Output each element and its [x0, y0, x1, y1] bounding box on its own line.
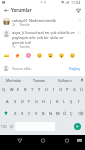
button[interactable]: C — [26, 107, 33, 119]
button[interactable]: cakaydi1 Nedimemindik — [0, 18, 85, 27]
staticText: X — [21, 111, 24, 116]
staticText: İ — [78, 99, 80, 104]
staticText: Ü — [80, 87, 83, 92]
button[interactable]: E — [15, 84, 22, 95]
staticText: W — [10, 87, 14, 92]
button[interactable]: U — [43, 84, 50, 95]
button[interactable]: Emoji — [8, 122, 15, 131]
button[interactable]: Merhaba — [0, 76, 26, 84]
staticText: ?123 — [1, 125, 7, 129]
staticText: Kullanıcı — [58, 78, 72, 83]
button[interactable]: Emoji reaction — [67, 51, 78, 60]
staticText: U — [45, 87, 48, 92]
button[interactable]: N — [47, 107, 54, 119]
button[interactable]: ?123 — [0, 122, 8, 131]
button[interactable]: Q — [0, 84, 8, 95]
button[interactable]: Share — [74, 6, 82, 14]
button[interactable]: Back — [0, 135, 31, 150]
button[interactable]: I — [50, 84, 57, 95]
button[interactable]: S — [11, 95, 19, 107]
staticText: Ş — [70, 99, 73, 104]
button[interactable]: Ş — [68, 95, 75, 107]
button[interactable]: Emoji reaction — [12, 51, 23, 60]
button[interactable]: Ü — [78, 84, 85, 95]
button[interactable]: H — [40, 95, 47, 107]
staticText: Q — [2, 87, 6, 92]
staticText: cakaydi1 Nedimemindik — [12, 18, 56, 23]
staticText: F — [28, 99, 31, 104]
button[interactable]: Y — [36, 84, 43, 95]
button[interactable]: Backspace — [75, 107, 85, 119]
button[interactable]: Emoji reaction — [23, 51, 34, 60]
staticText: Tamam — [33, 78, 46, 83]
button[interactable]: G — [33, 95, 40, 107]
button[interactable]: Emoji reaction — [56, 51, 67, 60]
button[interactable]: Send — [74, 123, 81, 130]
staticText: 2s Yanıtla — [12, 23, 30, 27]
staticText: H — [42, 99, 45, 104]
staticText: L — [63, 99, 66, 104]
button[interactable]: Hide keyboard — [73, 135, 85, 150]
staticText: Paylaş — [69, 66, 81, 71]
staticText: Yorumlar — [11, 7, 32, 13]
button[interactable]: R — [22, 84, 29, 95]
staticText: E — [17, 87, 20, 92]
button[interactable]: Paylaş — [68, 65, 82, 72]
button[interactable]: Z — [11, 107, 19, 119]
staticText: asya_k Sonuchsal en çok sibirlik ve payl… — [12, 30, 76, 45]
button[interactable]: D — [19, 95, 26, 107]
staticText: Yorum ekle... — [12, 66, 34, 71]
button[interactable]: P — [64, 84, 71, 95]
button[interactable]: Recent apps — [55, 135, 73, 150]
staticText: N — [49, 111, 53, 116]
staticText: J — [50, 99, 52, 104]
staticText: T — [31, 87, 34, 92]
staticText: Ç — [70, 111, 73, 116]
button[interactable]: J — [47, 95, 54, 107]
button[interactable]: Like — [77, 30, 82, 35]
button[interactable]: F — [26, 95, 33, 107]
staticText: P — [66, 87, 69, 92]
button[interactable]: T — [29, 84, 36, 95]
staticText: 1s Yanıtla — [12, 45, 30, 49]
staticText: Z — [14, 111, 17, 116]
button[interactable]: Back — [2, 6, 10, 14]
button[interactable]: Ö — [61, 107, 68, 119]
staticText: C — [28, 111, 31, 116]
staticText: A — [6, 99, 9, 104]
button[interactable]: Emoji reaction — [45, 51, 56, 60]
staticText: S — [14, 99, 17, 104]
button[interactable]: Kullanıcı — [52, 76, 78, 84]
button[interactable]: Voice input — [78, 76, 85, 84]
button[interactable]: W — [8, 84, 15, 95]
button[interactable]: Tamam — [26, 76, 52, 84]
staticText: I — [53, 87, 55, 92]
button[interactable]: Emoji reaction — [1, 51, 12, 60]
button[interactable]: L — [61, 95, 68, 107]
button[interactable]: Ğ — [71, 84, 78, 95]
staticText: B — [42, 111, 45, 116]
button[interactable]: asya_k Sonuchsal en çok sibirlik ve payl… — [0, 30, 85, 49]
staticText: Ö — [63, 111, 67, 116]
button[interactable]: X — [19, 107, 26, 119]
staticText: Merhaba — [6, 78, 21, 83]
staticText: Ğ — [73, 87, 76, 92]
button[interactable]: O — [57, 84, 64, 95]
button[interactable]: Like — [77, 18, 82, 23]
staticText: D — [21, 99, 24, 104]
button[interactable]: Ç — [68, 107, 75, 119]
staticText: Y — [38, 87, 41, 92]
button[interactable]: Shift — [0, 107, 11, 119]
button[interactable]: M — [54, 107, 61, 119]
button[interactable]: V — [33, 107, 40, 119]
button[interactable]: Home — [31, 135, 55, 150]
button[interactable]: A — [3, 95, 11, 107]
button[interactable]: İ — [75, 95, 82, 107]
button[interactable]: Emoji reaction — [34, 51, 45, 60]
button[interactable]: K — [54, 95, 61, 107]
staticText: M — [56, 111, 60, 116]
button[interactable]: B — [40, 107, 47, 119]
staticText: G — [35, 99, 38, 104]
